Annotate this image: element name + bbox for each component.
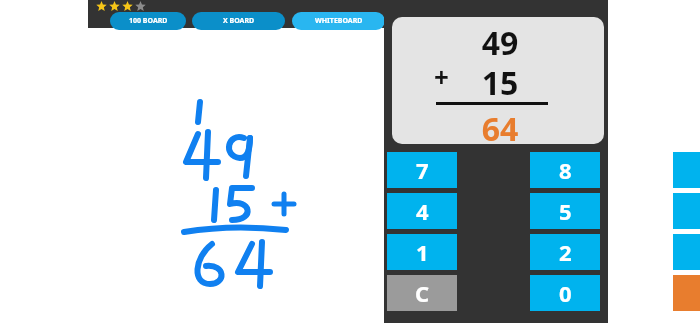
- staticText: +: [434, 59, 449, 94]
- staticText: WHITEBOARD: [315, 16, 363, 26]
- button[interactable]: X BOARD: [192, 12, 285, 30]
- button[interactable]: WHITEBOARD: [292, 12, 385, 30]
- staticText: 5: [559, 196, 572, 226]
- button[interactable]: 7: [387, 152, 457, 188]
- button[interactable]: 8: [530, 152, 600, 188]
- button[interactable]: 0: [530, 275, 600, 311]
- staticText: 2: [559, 237, 572, 267]
- staticText: 0: [559, 278, 572, 308]
- button[interactable]: 4: [387, 193, 457, 229]
- staticText: 49: [470, 21, 530, 65]
- button[interactable]: 2: [530, 234, 600, 270]
- staticText: X BOARD: [223, 16, 255, 26]
- staticText: C: [415, 278, 430, 308]
- staticText: 8: [559, 155, 572, 185]
- staticText: 100 BOARD: [129, 16, 168, 26]
- staticText: 4: [416, 196, 429, 226]
- staticText: 64: [470, 107, 530, 144]
- button[interactable]: 1: [387, 234, 457, 270]
- button[interactable]: +: [392, 17, 604, 144]
- button[interactable]: 100 BOARD: [110, 12, 186, 30]
- button[interactable]: 5: [530, 193, 600, 229]
- button[interactable]: C: [387, 275, 457, 311]
- staticText: 15: [470, 61, 530, 105]
- staticText: 1: [416, 237, 429, 267]
- staticText: 7: [416, 155, 429, 185]
